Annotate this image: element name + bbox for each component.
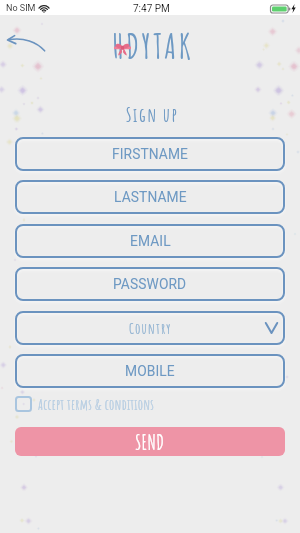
staticText: Country (129, 319, 172, 338)
button[interactable]: LASTNAME (15, 180, 285, 214)
button[interactable]: Accept terms & conditions (15, 395, 285, 412)
button[interactable]: PASSWORD (15, 267, 285, 301)
staticText: PASSWORD (113, 276, 187, 292)
staticText: Accept terms & conditions (38, 395, 155, 412)
staticText: 7:47 PM (133, 3, 170, 15)
button[interactable]: MOBILE (15, 354, 285, 388)
staticText: FIRSTNAME (112, 146, 189, 162)
button[interactable]: FIRSTNAME (15, 137, 285, 171)
button[interactable]: SEND (15, 427, 285, 456)
staticText: HDYTAK (3, 24, 300, 67)
button[interactable]: Back (7, 35, 45, 51)
staticText: SEND (135, 429, 165, 455)
staticText: MOBILE (125, 363, 175, 379)
staticText: LASTNAME (114, 189, 187, 205)
staticText: EMAIL (130, 233, 171, 249)
staticText: Sign up (2, 103, 300, 127)
button[interactable]: Country (15, 311, 285, 345)
button[interactable]: EMAIL (15, 224, 285, 258)
staticText: No SIM (6, 3, 36, 14)
